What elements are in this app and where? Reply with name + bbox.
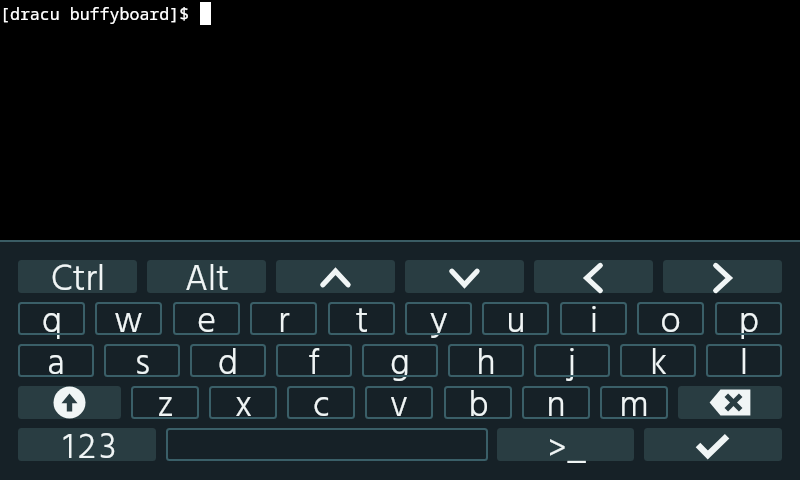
staticText: h: [476, 336, 496, 394]
button[interactable]: Backspace: [678, 386, 782, 419]
button[interactable]: e: [173, 302, 240, 335]
button[interactable]: g: [362, 344, 438, 377]
button[interactable]: m: [600, 386, 668, 419]
button[interactable]: w: [95, 302, 162, 335]
button[interactable]: r: [250, 302, 317, 335]
button[interactable]: t: [328, 302, 395, 335]
staticText: e: [197, 294, 216, 352]
button[interactable]: x: [209, 386, 277, 419]
staticText: 123: [63, 420, 120, 478]
staticText: f: [308, 336, 320, 394]
staticText: [dracu buffyboard]$: [0, 2, 200, 25]
staticText: o: [660, 294, 681, 352]
button[interactable]: Arrow down: [405, 260, 524, 293]
staticText: k: [650, 336, 667, 394]
staticText: x: [235, 378, 252, 436]
staticText: j: [568, 336, 576, 394]
button[interactable]: 123: [18, 428, 156, 461]
button[interactable]: Arrow left: [534, 260, 653, 293]
staticText: u: [506, 294, 526, 352]
staticText: c: [313, 378, 330, 436]
staticText: Alt: [185, 252, 229, 310]
button[interactable]: p: [715, 302, 782, 335]
staticText: l: [740, 336, 748, 394]
button[interactable]: Arrow right: [663, 260, 782, 293]
staticText: r: [278, 294, 290, 352]
button[interactable]: i: [560, 302, 627, 335]
staticText: d: [218, 336, 238, 394]
button[interactable]: h: [448, 344, 524, 377]
button[interactable]: u: [482, 302, 549, 335]
staticText: s: [135, 336, 150, 394]
button[interactable]: Ctrl: [18, 260, 137, 293]
button[interactable]: o: [637, 302, 704, 335]
button[interactable]: >_: [497, 428, 634, 461]
button[interactable]: Enter: [644, 428, 782, 461]
button[interactable]: b: [444, 386, 512, 419]
staticText: m: [619, 378, 649, 436]
staticText: z: [157, 378, 174, 436]
staticText: >_: [548, 422, 587, 480]
button[interactable]: z: [131, 386, 199, 419]
button[interactable]: a: [18, 344, 94, 377]
button[interactable]: c: [287, 386, 355, 419]
button[interactable]: Space: [166, 428, 488, 461]
button[interactable]: f: [276, 344, 352, 377]
button[interactable]: d: [190, 344, 266, 377]
button[interactable]: v: [365, 386, 433, 419]
button[interactable]: Alt: [147, 260, 266, 293]
staticText: v: [390, 378, 408, 436]
button[interactable]: s: [104, 344, 180, 377]
staticText: b: [468, 378, 489, 436]
button[interactable]: l: [706, 344, 782, 377]
staticText: w: [114, 294, 143, 352]
button[interactable]: k: [620, 344, 696, 377]
staticText: y: [430, 294, 448, 352]
staticText: i: [590, 294, 598, 352]
staticText: q: [42, 294, 62, 352]
button[interactable]: Arrow up: [276, 260, 395, 293]
button[interactable]: j: [534, 344, 610, 377]
button[interactable]: q: [18, 302, 85, 335]
staticText: p: [739, 294, 759, 352]
button[interactable]: y: [405, 302, 472, 335]
staticText: n: [546, 378, 566, 436]
staticText: a: [47, 336, 65, 394]
button[interactable]: n: [522, 386, 590, 419]
staticText: t: [355, 294, 369, 352]
staticText: g: [390, 336, 410, 394]
button[interactable]: Shift: [18, 386, 121, 419]
staticText: Ctrl: [51, 252, 105, 310]
